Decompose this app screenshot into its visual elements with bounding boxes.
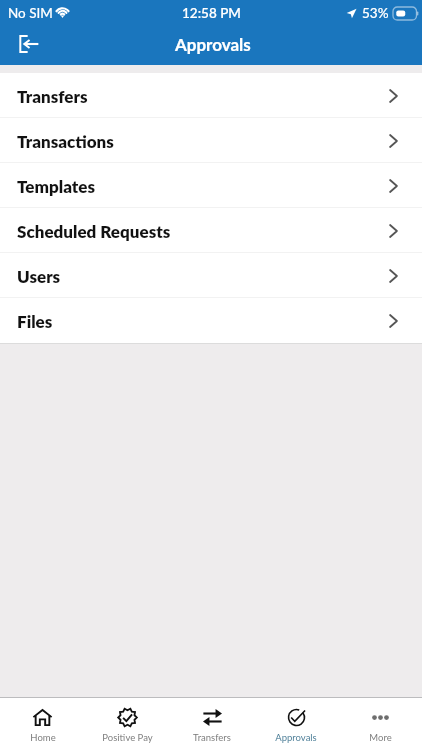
staticText: Approvals [175,34,251,54]
staticText: Files [17,311,53,331]
staticText: Transfers [17,86,88,106]
button[interactable]: Approvals [254,698,338,750]
staticText: More [369,732,392,743]
button[interactable]: Home [0,698,85,750]
staticText: Approvals [275,732,317,743]
button[interactable]: More [338,698,422,750]
button[interactable]: Templates [0,163,422,208]
button[interactable]: Scheduled Requests [0,208,422,253]
staticText: 12:58 PM [182,5,241,21]
staticText: No SIM [8,5,53,21]
button[interactable]: Transfers [170,698,254,750]
staticText: Users [17,266,61,286]
staticText: Home [30,732,56,743]
staticText: Transactions [17,131,114,151]
staticText: Scheduled Requests [17,221,171,241]
button[interactable]: Transactions [0,118,422,163]
staticText: Transfers [193,732,231,743]
staticText: Positive Pay [102,732,153,743]
button[interactable]: Files [0,298,422,343]
button[interactable]: Users [0,253,422,298]
staticText: 53% [362,5,389,21]
button[interactable]: Positive Pay [85,698,170,750]
button[interactable]: Transfers [0,73,422,118]
button[interactable]: Log out [11,28,45,62]
staticText: Templates [17,176,96,196]
